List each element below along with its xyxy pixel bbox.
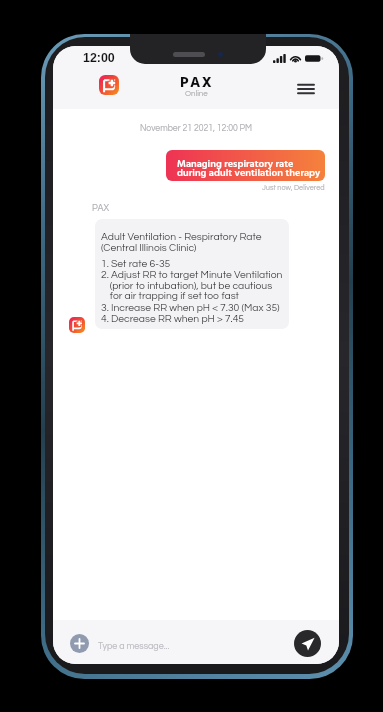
staticText: during adult ventilation therapy (177, 165, 321, 181)
button[interactable]: Add attachment (70, 634, 89, 653)
staticText: 1. Set rate 6-35 (101, 259, 171, 270)
button[interactable]: Managing respiratory rate (166, 150, 325, 181)
staticText: 12:00 (83, 51, 115, 65)
staticText: (prior to intubation), but be cautious (101, 281, 273, 292)
staticText: PAX (180, 71, 214, 95)
staticText: Online (185, 89, 208, 97)
button[interactable]: PAX logo (99, 75, 119, 95)
staticText: Type a message... (98, 642, 170, 651)
staticText: 4. Decrease RR when pH > 7.45 (101, 314, 245, 325)
staticText: Adult Ventilation - Respiratory Rate (101, 232, 262, 243)
staticText: (Central Illinois Clinic) (101, 243, 197, 254)
staticText: Managing respiratory rate (177, 156, 294, 172)
button[interactable]: Send (294, 630, 321, 657)
button[interactable]: Adult Ventilation - Respiratory Rate (95, 219, 289, 329)
button[interactable]: Menu (294, 77, 318, 101)
staticText: for air trapping if set too fast (101, 291, 239, 302)
staticText: 3. Increase RR when pH < 7.30 (Max 35) (101, 303, 280, 314)
staticText: 2. Adjust RR to target Minute Ventilatio… (101, 270, 283, 281)
staticText: PAX (92, 204, 109, 213)
staticText: November 21 2021, 12:00 PM (53, 124, 339, 133)
staticText: Just now, Delivered (262, 184, 325, 192)
